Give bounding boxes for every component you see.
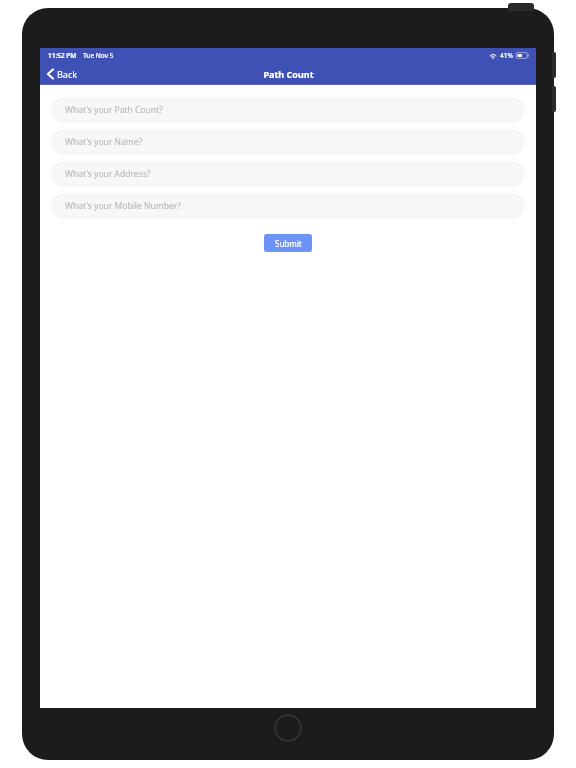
button[interactable]: Submit	[264, 234, 312, 252]
staticText: 11:52 PM	[48, 51, 77, 60]
button[interactable]: What's your Address?	[51, 161, 525, 187]
staticText: 41%	[500, 51, 513, 60]
staticText: What's your Path Count?	[65, 104, 163, 116]
staticText: What's your Name?	[65, 136, 143, 148]
staticText: What's your Address?	[65, 168, 151, 180]
other: Home	[274, 714, 302, 742]
staticText: Submit	[275, 238, 302, 249]
staticText: Back	[57, 68, 78, 80]
staticText: Tue Nov 5	[83, 51, 114, 60]
button[interactable]: Back	[40, 65, 86, 83]
button[interactable]: What's your Name?	[51, 129, 525, 155]
staticText: What's your Mobile Number?	[65, 200, 181, 212]
button[interactable]: What's your Mobile Number?	[51, 193, 525, 219]
staticText: Path Count	[263, 68, 314, 80]
button[interactable]: What's your Path Count?	[51, 97, 525, 123]
